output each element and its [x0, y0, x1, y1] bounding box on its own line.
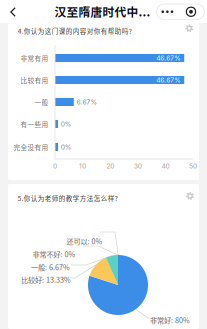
staticText: 4.你认为这门课的内容对你有帮助吗?: [18, 26, 132, 36]
staticText: 30: [134, 162, 142, 170]
staticText: 50: [189, 162, 197, 170]
staticText: 一般: 6.67%: [31, 262, 70, 272]
staticText: 比较好: 13.33%: [21, 274, 71, 285]
staticText: 0%: [61, 120, 72, 128]
staticText: 有一些用: [20, 119, 48, 129]
staticText: 5.你认为老师的教学方法怎么样?: [18, 193, 118, 203]
button[interactable]: More options: [156, 4, 204, 19]
staticText: 还可以: 0%: [66, 236, 102, 246]
staticText: 46.67%: [156, 54, 181, 62]
staticText: 46.67%: [156, 76, 181, 84]
button[interactable]: Chart options: [182, 21, 196, 35]
staticText: 20: [106, 162, 114, 170]
staticText: 40: [161, 162, 169, 170]
staticText: 6.67%: [77, 98, 98, 106]
button[interactable]: Chart options: [183, 189, 197, 203]
staticText: 0: [53, 162, 57, 170]
staticText: 比较有用: [20, 75, 48, 85]
staticText: 10: [79, 162, 86, 170]
staticText: 非常好: 80%: [150, 315, 190, 325]
staticText: 汉至隋唐时代中...: [54, 3, 150, 20]
button[interactable]: Back: [2, 0, 24, 23]
staticText: 完全没有用: [13, 142, 48, 152]
staticText: 非常有用: [20, 53, 48, 63]
staticText: 0%: [61, 143, 72, 151]
staticText: 非常不好: 0%: [33, 249, 76, 259]
staticText: 一般: [34, 97, 48, 107]
